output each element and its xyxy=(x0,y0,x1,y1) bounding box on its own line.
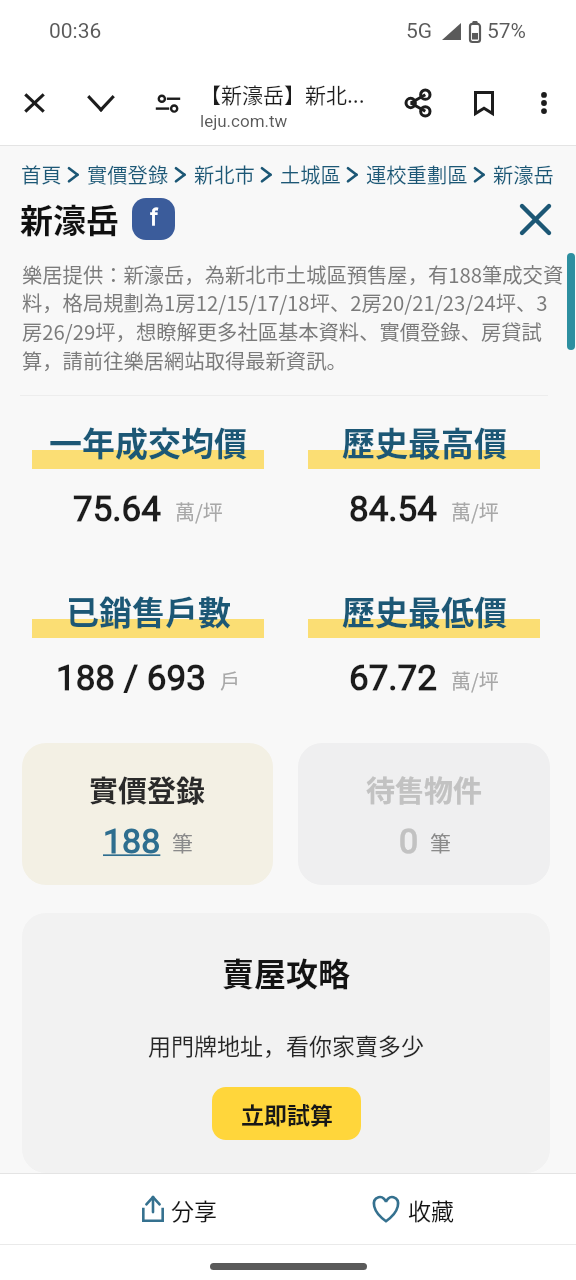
staticText: 75.64 xyxy=(73,489,161,530)
button[interactable]: 運校重劃區 xyxy=(366,159,468,188)
staticText: 歷史最低價 xyxy=(342,587,507,635)
staticText: 一年成交均價 xyxy=(49,418,247,466)
staticText: 57% xyxy=(487,19,526,44)
staticText: 收藏 xyxy=(408,1193,454,1226)
button[interactable]: Close banner xyxy=(510,194,560,244)
staticText: 【新濠岳】新北... xyxy=(200,79,365,109)
button[interactable]: More options xyxy=(510,69,576,137)
staticText: 戶 xyxy=(220,666,240,695)
button[interactable]: Page info xyxy=(134,69,202,137)
staticText: 筆 xyxy=(172,827,193,857)
staticText: 萬/坪 xyxy=(451,666,499,695)
staticText: 0 xyxy=(399,821,419,861)
button[interactable]: Close xyxy=(0,69,68,137)
button[interactable]: 分享 xyxy=(140,1174,219,1244)
staticText: 樂居提供：新濠岳，為新北市土城區預售屋，有188筆成交資料，格局規劃為1房12/… xyxy=(22,259,567,375)
staticText: leju.com.tw xyxy=(200,111,288,131)
staticText: 新濠岳 xyxy=(493,159,554,188)
staticText: 萬/坪 xyxy=(451,497,499,526)
button[interactable]: 首頁 xyxy=(21,159,62,188)
staticText: 新北市 xyxy=(194,159,255,188)
button[interactable]: 實價登錄 xyxy=(87,159,169,188)
button[interactable]: Bookmark xyxy=(450,69,518,137)
button[interactable]: Collapse xyxy=(67,69,135,137)
staticText: 188 / 693 xyxy=(56,658,206,699)
staticText: 萬/坪 xyxy=(175,497,223,526)
staticText: 67.72 xyxy=(349,658,437,699)
button[interactable]: 待售物件 xyxy=(298,743,550,885)
staticText: 實價登錄 xyxy=(87,159,169,188)
staticText: 00:36 xyxy=(49,19,102,44)
button[interactable]: 收藏 xyxy=(369,1174,456,1244)
staticText: 用門牌地址，看你家賣多少 xyxy=(148,1028,424,1061)
staticText: 歷史最高價 xyxy=(342,418,507,466)
button[interactable]: 立即試算 xyxy=(212,1087,361,1140)
staticText: 筆 xyxy=(430,827,451,857)
staticText: 土城區 xyxy=(280,159,341,188)
button[interactable]: 土城區 xyxy=(280,159,341,188)
staticText: 188 xyxy=(103,821,161,861)
button[interactable]: 新濠岳 xyxy=(493,159,554,188)
staticText: 實價登錄 xyxy=(89,768,206,810)
staticText: 賣屋攻略 xyxy=(222,949,351,995)
staticText: f xyxy=(150,205,158,231)
button[interactable]: Share xyxy=(384,69,452,137)
staticText: 首頁 xyxy=(21,159,62,188)
staticText: 84.54 xyxy=(349,489,437,530)
staticText: 新濠岳 xyxy=(20,195,119,243)
staticText: 運校重劃區 xyxy=(366,159,468,188)
staticText: 5G xyxy=(406,19,433,44)
staticText: 待售物件 xyxy=(366,768,483,810)
staticText: 已銷售戶數 xyxy=(66,587,231,635)
button[interactable]: Share on Facebook xyxy=(132,198,175,240)
staticText: 分享 xyxy=(171,1193,217,1226)
staticText: 立即試算 xyxy=(241,1097,333,1130)
button[interactable]: 實價登錄 xyxy=(22,743,273,885)
button[interactable]: 新北市 xyxy=(194,159,255,188)
